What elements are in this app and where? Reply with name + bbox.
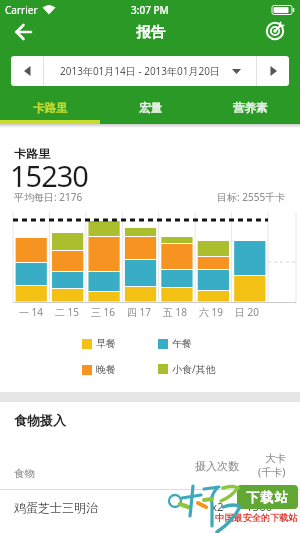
button[interactable]: [11, 56, 43, 86]
staticText: 中国最安全的下载站: [215, 512, 298, 524]
staticText: 三 16: [91, 305, 116, 319]
staticText: 早餐: [96, 337, 116, 350]
staticText: (千卡): [258, 465, 286, 479]
staticText: 3:07 PM: [131, 3, 169, 17]
button[interactable]: [8, 20, 38, 44]
staticText: 食物: [14, 467, 35, 480]
staticText: 2013年01月14日 - 2013年01月20日: [60, 64, 220, 78]
staticText: 晚餐: [96, 363, 116, 376]
staticText: 宏量: [139, 101, 162, 115]
staticText: 二 15: [55, 305, 80, 319]
staticText: x2: [211, 499, 224, 515]
staticText: Carrier: [5, 3, 38, 17]
staticText: 报告: [136, 23, 165, 41]
staticText: 卡路里: [14, 146, 50, 161]
staticText: 营养素: [233, 101, 268, 115]
button[interactable]: [257, 56, 289, 86]
staticText: 午餐: [172, 337, 192, 350]
button[interactable]: 2013年01月14日 - 2013年01月20日: [44, 56, 256, 86]
staticText: 食物摄入: [14, 412, 66, 428]
staticText: 大卡: [265, 452, 286, 465]
button[interactable]: [263, 18, 289, 42]
button[interactable]: 卡路里: [0, 92, 100, 124]
staticText: 下载站: [246, 489, 290, 505]
staticText: 卡路里: [33, 101, 68, 115]
staticText: 摄入次数: [195, 459, 239, 473]
staticText: 四 17: [127, 305, 152, 319]
staticText: 平均每日: 2176: [14, 190, 83, 204]
button[interactable]: 宏量: [100, 92, 200, 124]
button[interactable]: 鸡蛋芝士三明治: [14, 490, 286, 524]
staticText: 15230: [10, 156, 88, 195]
staticText: 目标: 2555千卡: [217, 190, 286, 204]
button[interactable]: 下载站: [237, 485, 298, 509]
staticText: 鸡蛋芝士三明治: [14, 500, 98, 515]
staticText: 五 18: [163, 305, 188, 319]
staticText: 日 20: [235, 305, 260, 319]
staticText: 小食/其他: [172, 362, 216, 376]
staticText: 一 14: [19, 305, 44, 319]
staticText: 1300: [246, 499, 273, 515]
button[interactable]: 营养素: [200, 92, 300, 124]
staticText: 六 19: [199, 305, 224, 319]
